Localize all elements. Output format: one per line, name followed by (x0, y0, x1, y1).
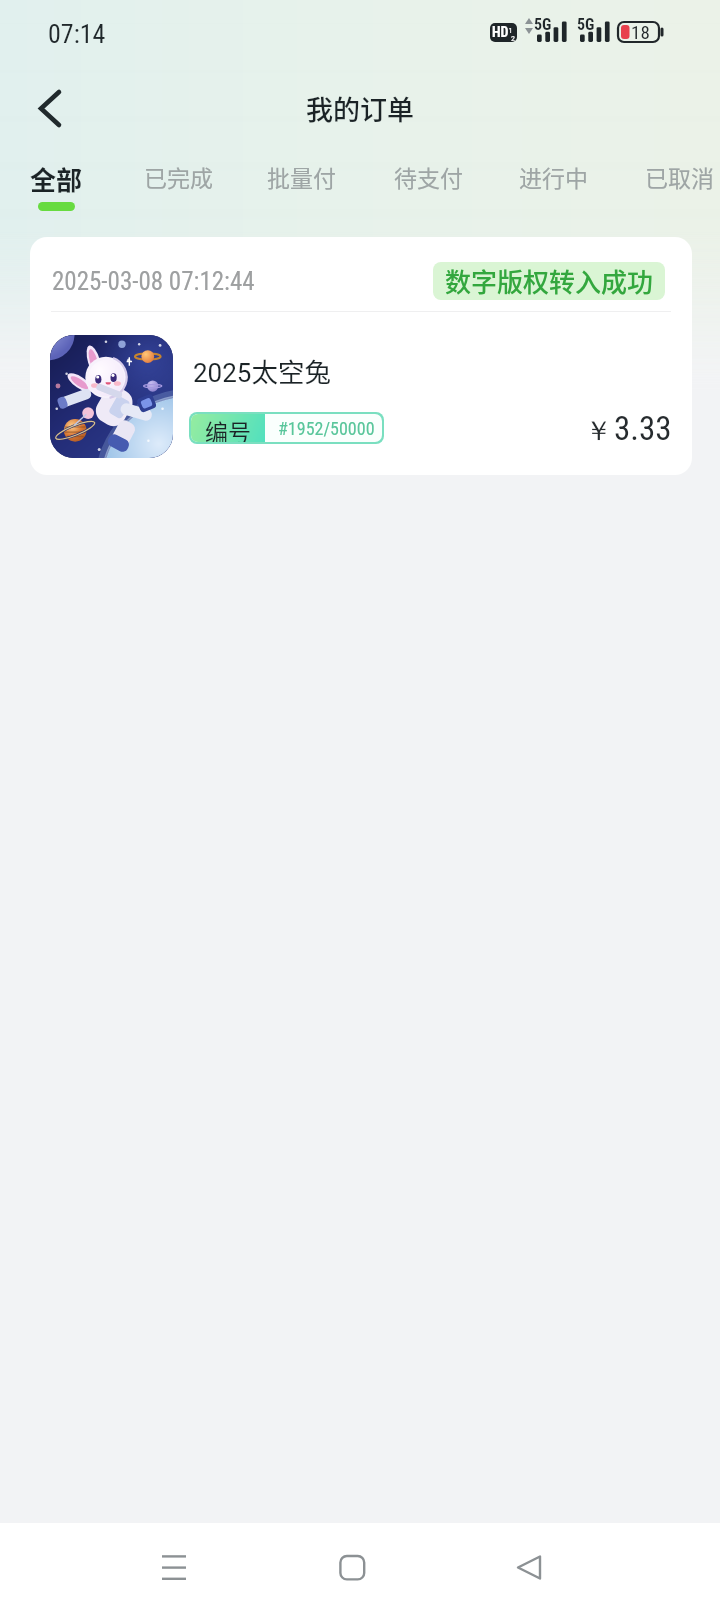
button[interactable]: 待支付 (379, 150, 477, 218)
staticText: 我的订单 (306, 89, 414, 128)
staticText: 已完成 (144, 160, 213, 193)
staticText: 07:14 (48, 19, 106, 49)
staticText: HD1 (492, 24, 513, 40)
staticText: 进行中 (519, 160, 588, 193)
button[interactable]: 2025-03-08 07:12:44 (30, 237, 692, 475)
button[interactable]: 已取消 (630, 150, 720, 218)
button[interactable]: 批量付 (252, 150, 350, 218)
staticText: 18 (631, 21, 650, 43)
button[interactable]: Back (14, 73, 86, 145)
staticText: 2025-03-08 07:12:44 (52, 267, 255, 296)
button[interactable]: Recent apps (134, 1532, 214, 1612)
staticText: 编号 (205, 414, 251, 442)
staticText: 待支付 (394, 160, 463, 193)
staticText: 批量付 (267, 160, 336, 193)
staticText: 2025太空兔 (193, 351, 331, 389)
staticText: 数字版权转入成功 (445, 262, 654, 300)
staticText: 全部 (30, 160, 83, 198)
button[interactable]: 进行中 (504, 150, 602, 218)
staticText: 已取消 (645, 160, 714, 193)
staticText: 5G (577, 15, 595, 34)
staticText: ￥ 3.33 (585, 409, 672, 448)
button[interactable]: Home (312, 1532, 392, 1612)
staticText: #1952/50000 (278, 418, 375, 439)
button[interactable]: Back (490, 1532, 570, 1612)
button[interactable]: 全部 (15, 150, 97, 218)
button[interactable]: 已完成 (129, 150, 227, 218)
staticText: 5G (534, 15, 552, 34)
staticText: 2 (511, 34, 515, 42)
